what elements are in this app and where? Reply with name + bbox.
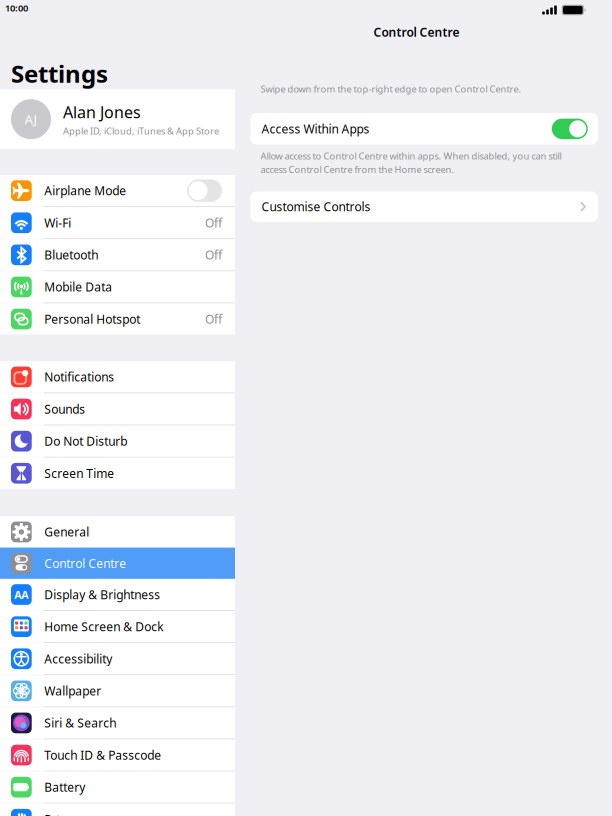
button[interactable]: Accessibility bbox=[0, 643, 235, 674]
button[interactable]: Wallpaper bbox=[0, 675, 235, 706]
staticText: Control Centre bbox=[44, 555, 126, 571]
button[interactable]: Airplane Mode bbox=[0, 175, 235, 206]
button[interactable]: Access Within Apps bbox=[250, 113, 598, 145]
button[interactable]: Wi-Fi bbox=[0, 207, 235, 238]
staticText: access Control Centre from the Home scre… bbox=[260, 163, 454, 175]
staticText: Siri & Search bbox=[44, 715, 116, 731]
staticText: 10:00 bbox=[5, 2, 28, 14]
staticText: Off bbox=[205, 247, 222, 263]
staticText: Swipe down from the top-right edge to op… bbox=[260, 83, 521, 95]
staticText: Mobile Data bbox=[44, 279, 112, 295]
button[interactable]: Privacy bbox=[0, 804, 235, 816]
staticText: Wallpaper bbox=[44, 683, 101, 699]
staticText: Airplane Mode bbox=[44, 183, 126, 199]
staticText: General bbox=[44, 524, 89, 540]
button[interactable]: Siri & Search bbox=[0, 707, 235, 739]
staticText: Bluetooth bbox=[44, 247, 98, 263]
staticText: Allow access to Control Centre within ap… bbox=[260, 150, 561, 162]
button[interactable]: Bluetooth bbox=[0, 239, 235, 270]
staticText: Off bbox=[205, 311, 222, 327]
staticText: Home Screen & Dock bbox=[44, 619, 163, 635]
staticText: Battery bbox=[44, 779, 85, 795]
staticText: Display & Brightness bbox=[44, 587, 160, 602]
staticText: Customise Controls bbox=[261, 199, 370, 215]
button[interactable]: AA bbox=[0, 579, 235, 610]
staticText: Settings bbox=[11, 57, 108, 89]
button[interactable]: General bbox=[0, 516, 235, 548]
staticText: Wi-Fi bbox=[44, 215, 71, 231]
button[interactable]: Control Centre bbox=[0, 548, 235, 579]
button[interactable]: AJ bbox=[0, 89, 235, 149]
staticText: Accessibility bbox=[44, 651, 112, 667]
staticText: Control Centre bbox=[373, 24, 459, 40]
staticText: Notifications bbox=[44, 369, 114, 385]
staticText: AA bbox=[14, 587, 28, 602]
staticText: Access Within Apps bbox=[261, 121, 369, 137]
button[interactable]: Do Not Disturb bbox=[0, 425, 235, 457]
staticText: Sounds bbox=[44, 401, 85, 417]
button[interactable]: Battery bbox=[0, 771, 235, 803]
button[interactable]: Touch ID & Passcode bbox=[0, 739, 235, 771]
staticText: Apple ID, iCloud, iTunes & App Store bbox=[63, 125, 219, 137]
button[interactable]: Screen Time bbox=[0, 458, 235, 489]
button[interactable]: Personal Hotspot bbox=[0, 303, 235, 335]
button[interactable]: Home Screen & Dock bbox=[0, 611, 235, 642]
button[interactable]: Mobile Data bbox=[0, 271, 235, 303]
staticText: Personal Hotspot bbox=[44, 311, 140, 327]
staticText: Alan Jones bbox=[63, 101, 141, 123]
staticText: Off bbox=[205, 215, 222, 231]
staticText: Screen Time bbox=[44, 465, 114, 481]
staticText: Do Not Disturb bbox=[44, 433, 127, 449]
staticText: AJ bbox=[24, 110, 37, 128]
button[interactable]: Notifications bbox=[0, 361, 235, 393]
button[interactable]: Customise Controls bbox=[250, 191, 598, 222]
button[interactable]: Sounds bbox=[0, 393, 235, 425]
staticText: Touch ID & Passcode bbox=[44, 747, 161, 763]
staticText: Privacy bbox=[44, 811, 84, 816]
